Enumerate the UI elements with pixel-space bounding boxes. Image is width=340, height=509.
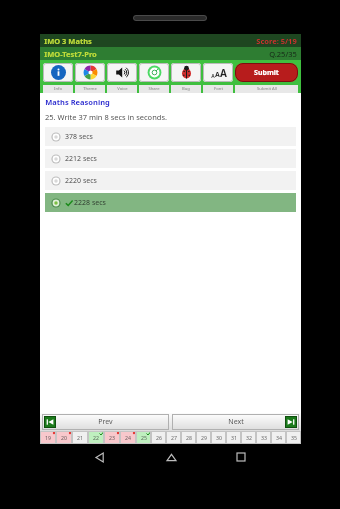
staticText: 21 (77, 434, 83, 441)
button[interactable]: 30 (211, 431, 226, 444)
staticText: Share (148, 86, 160, 92)
staticText: 23 (109, 434, 115, 441)
button[interactable]: 27 (166, 431, 181, 444)
staticText: 2212 secs (65, 154, 97, 164)
staticText: 31 (231, 434, 237, 441)
button[interactable]: 20 (56, 431, 72, 444)
button[interactable]: 2220 secs (51, 171, 296, 190)
button[interactable]: 29 (196, 431, 211, 444)
button[interactable]: Theme (75, 63, 105, 82)
staticText: 25 (141, 434, 147, 441)
button[interactable]: 19 (40, 431, 56, 444)
staticText: 20 (61, 434, 67, 441)
button[interactable]: 31 (226, 431, 241, 444)
staticText: A (220, 66, 226, 80)
staticText: 27 (171, 434, 177, 441)
staticText: 2228 secs (74, 198, 106, 208)
staticText: Info (54, 86, 62, 92)
staticText: 30 (216, 434, 222, 441)
button[interactable]: 2228 secs (51, 193, 296, 212)
staticText: Voice (117, 86, 128, 92)
staticText: Q.25/35 (269, 49, 297, 59)
button[interactable]: 32 (241, 431, 256, 444)
staticText: IMO-Test7-Pro (44, 49, 97, 59)
staticText: 33 (261, 434, 267, 441)
button[interactable]: Voice (107, 63, 137, 82)
button[interactable]: 25 (136, 431, 151, 444)
staticText: A (211, 73, 215, 80)
staticText: A (215, 70, 220, 80)
staticText: Font (214, 86, 223, 92)
staticText: Score: 5/19 (256, 36, 297, 46)
staticText: Submit (254, 68, 279, 78)
button[interactable]: Back (89, 446, 111, 468)
staticText: Bug (182, 86, 190, 92)
button[interactable]: 34 (271, 431, 286, 444)
button[interactable]: 28 (181, 431, 196, 444)
button[interactable]: 24 (120, 431, 136, 444)
button[interactable]: 22 (88, 431, 104, 444)
button[interactable]: 2212 secs (51, 149, 296, 168)
staticText: 34 (276, 434, 282, 441)
button[interactable]: Last question (285, 416, 297, 428)
staticText: Maths Reasoning (45, 97, 110, 107)
staticText: 26 (156, 434, 162, 441)
staticText: 19 (45, 434, 51, 441)
staticText: IMO 3 Maths (44, 36, 92, 46)
staticText: 28 (186, 434, 192, 441)
button[interactable]: Home (160, 446, 182, 468)
button[interactable]: 21 (72, 431, 88, 444)
staticText: 35 (291, 434, 297, 441)
button[interactable]: Font (203, 63, 233, 82)
button[interactable]: 35 (286, 431, 301, 444)
button[interactable]: 23 (104, 431, 120, 444)
button[interactable]: Share (139, 63, 169, 82)
staticText: 24 (125, 434, 131, 441)
button[interactable]: 378 secs (51, 127, 296, 146)
staticText: 25. Write 37 min 8 secs in seconds. (45, 112, 167, 122)
button[interactable]: Bug (171, 63, 201, 82)
button[interactable]: Submit (235, 63, 298, 82)
button[interactable]: First question (44, 416, 56, 428)
staticText: 378 secs (65, 132, 93, 142)
button[interactable]: Recents (230, 446, 252, 468)
button[interactable]: 33 (256, 431, 271, 444)
button[interactable]: 26 (151, 431, 166, 444)
staticText: 32 (246, 434, 252, 441)
staticText: 2220 secs (65, 176, 97, 186)
staticText: Next (228, 417, 244, 427)
button[interactable]: First question (42, 414, 169, 430)
staticText: 29 (201, 434, 207, 441)
button[interactable]: Info (43, 63, 73, 82)
staticText: Theme (83, 86, 97, 92)
button[interactable]: Next (172, 414, 299, 430)
staticText: Prev (98, 417, 113, 427)
staticText: Submit All (257, 86, 277, 92)
staticText: 22 (93, 434, 99, 441)
